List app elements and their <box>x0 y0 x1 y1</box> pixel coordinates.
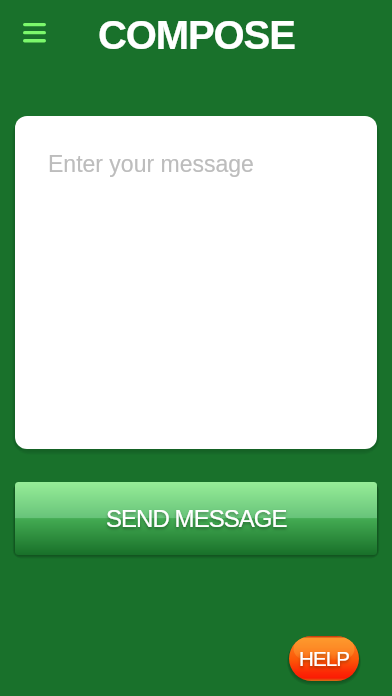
button[interactable]: SEND MESSAGE <box>15 482 377 555</box>
staticText: Enter your message <box>48 151 254 177</box>
button[interactable]: HELP <box>289 636 359 681</box>
button[interactable]: Open navigation menu <box>15 14 53 50</box>
staticText: HELP <box>299 647 349 670</box>
button[interactable]: Enter your message <box>15 116 377 449</box>
staticText: COMPOSE <box>98 13 295 58</box>
staticText: SEND MESSAGE <box>106 505 287 532</box>
